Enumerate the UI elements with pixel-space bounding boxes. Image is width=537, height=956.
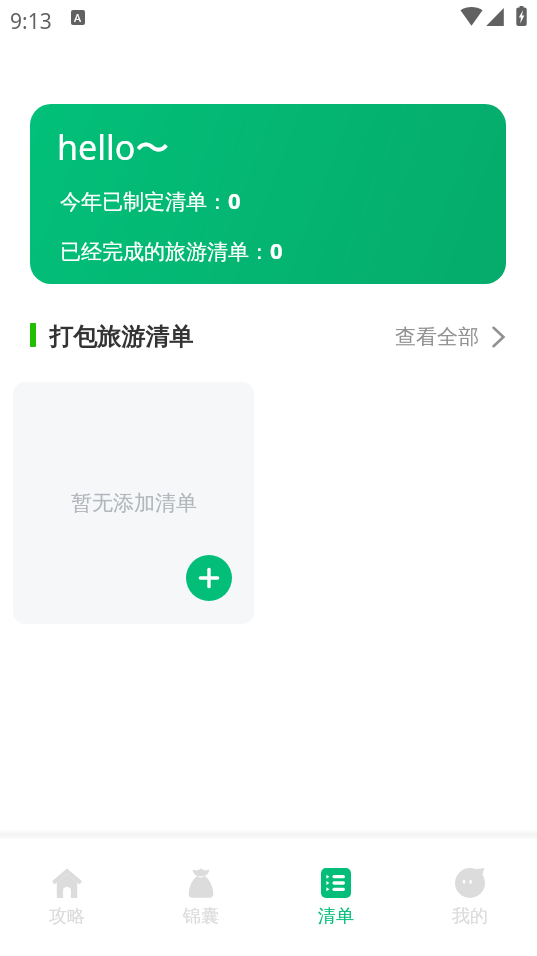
staticText: 清单: [318, 905, 354, 928]
staticText: A: [74, 10, 82, 25]
staticText: 已经完成的旅游清单: [60, 239, 249, 265]
staticText: 攻略: [49, 905, 85, 928]
button[interactable]: 我的: [403, 835, 537, 956]
staticText: hello〜: [57, 124, 170, 170]
button[interactable]: 攻略: [0, 835, 134, 956]
button[interactable]: 查看全部: [395, 322, 505, 348]
button[interactable]: hello〜: [30, 104, 506, 284]
staticText: ：: [207, 189, 228, 215]
staticText: ：: [249, 239, 270, 265]
button[interactable]: 锦囊: [134, 835, 268, 956]
staticText: 0: [270, 235, 283, 265]
staticText: 锦囊: [183, 905, 219, 928]
button[interactable]: Add list: [186, 555, 232, 601]
staticText: 打包旅游清单: [49, 322, 193, 352]
staticText: 今年已制定清单: [60, 189, 207, 215]
staticText: 我的: [452, 905, 488, 928]
staticText: 暂无添加清单: [71, 490, 197, 516]
staticText: 查看全部: [395, 324, 479, 350]
staticText: 0: [228, 185, 241, 215]
staticText: 9:13: [10, 7, 52, 36]
button[interactable]: 暂无添加清单: [13, 382, 254, 624]
button[interactable]: 清单: [269, 835, 403, 956]
